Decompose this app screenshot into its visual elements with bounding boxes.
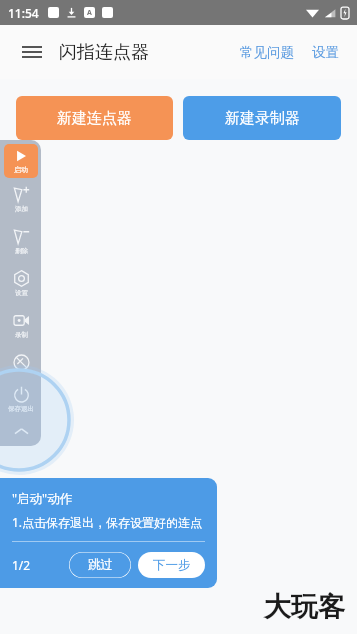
button[interactable]: 设置 [2,270,40,304]
button[interactable]: Menu [16,36,48,68]
staticText: 大玩客 [264,590,345,624]
staticText: 常见问题 [240,44,294,61]
staticText: 新建录制器 [225,109,300,128]
staticText: 录制 [15,331,28,339]
button[interactable]: Collapse [4,420,38,442]
staticText: 添加 [15,205,28,213]
button[interactable]: 录制 [2,312,40,346]
staticText: 启动 [14,165,28,174]
staticText: 11:54 [8,5,39,21]
button[interactable]: 跳过 [69,552,131,578]
button[interactable]: Hide [2,354,40,380]
button[interactable]: 新建录制器 [183,96,341,140]
staticText: 1.点击保存退出，保存设置好的连点 [12,514,203,530]
staticText: A [87,8,92,18]
staticText: 保存退出 [8,405,34,413]
staticText: 设置 [312,44,339,61]
button[interactable]: 常见问题 [238,38,296,67]
button[interactable]: 保存退出 [2,386,40,420]
button[interactable]: 新建连点器 [16,96,173,140]
staticText: "启动"动作 [12,490,73,507]
button[interactable]: 删除 [2,228,40,262]
staticText: 删除 [15,247,28,255]
button[interactable]: 下一步 [138,552,205,578]
staticText: 设置 [15,289,28,297]
staticText: 1/2 [12,557,31,573]
staticText: 新建连点器 [57,109,132,128]
button[interactable]: 设置 [310,38,341,67]
button[interactable]: 启动 [4,144,38,178]
staticText: 跳过 [88,557,113,573]
staticText: 闪指连点器 [59,41,149,64]
button[interactable]: 添加 [2,186,40,220]
staticText: 下一步 [153,557,191,573]
